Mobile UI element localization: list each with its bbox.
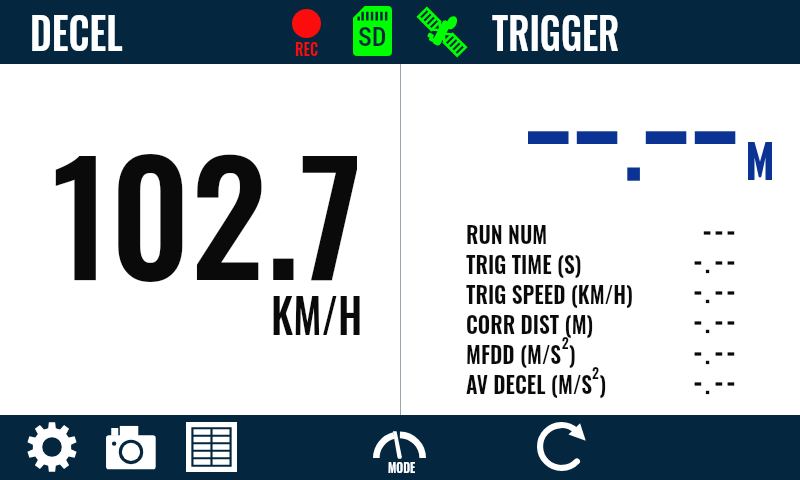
- button[interactable]: Camera: [105, 421, 157, 473]
- button[interactable]: Reset: [537, 422, 586, 471]
- staticText: TRIG TIME (S): [466, 246, 582, 281]
- staticText: MFDD (M/S: [466, 336, 562, 371]
- staticText: 102.7: [52, 98, 363, 324]
- staticText: 2: [592, 361, 599, 383]
- button[interactable]: Settings: [27, 422, 77, 472]
- staticText: ): [569, 336, 576, 371]
- staticText: CORR DIST (M): [466, 306, 594, 341]
- staticText: SD: [358, 22, 387, 52]
- staticText: MODE: [388, 456, 415, 477]
- staticText: 2: [562, 331, 569, 353]
- staticText: AV DECEL (M/S: [466, 366, 592, 401]
- staticText: DECEL: [30, 0, 123, 62]
- staticText: TRIG SPEED (KM/H): [466, 276, 633, 311]
- staticText: ): [599, 366, 607, 401]
- button[interactable]: Results table: [186, 422, 237, 472]
- staticText: RUN NUM: [466, 216, 548, 251]
- staticText: REC: [295, 36, 319, 61]
- staticText: KM/H: [271, 278, 363, 348]
- staticText: TRIGGER: [492, 0, 620, 62]
- button[interactable]: Mode: [373, 427, 427, 477]
